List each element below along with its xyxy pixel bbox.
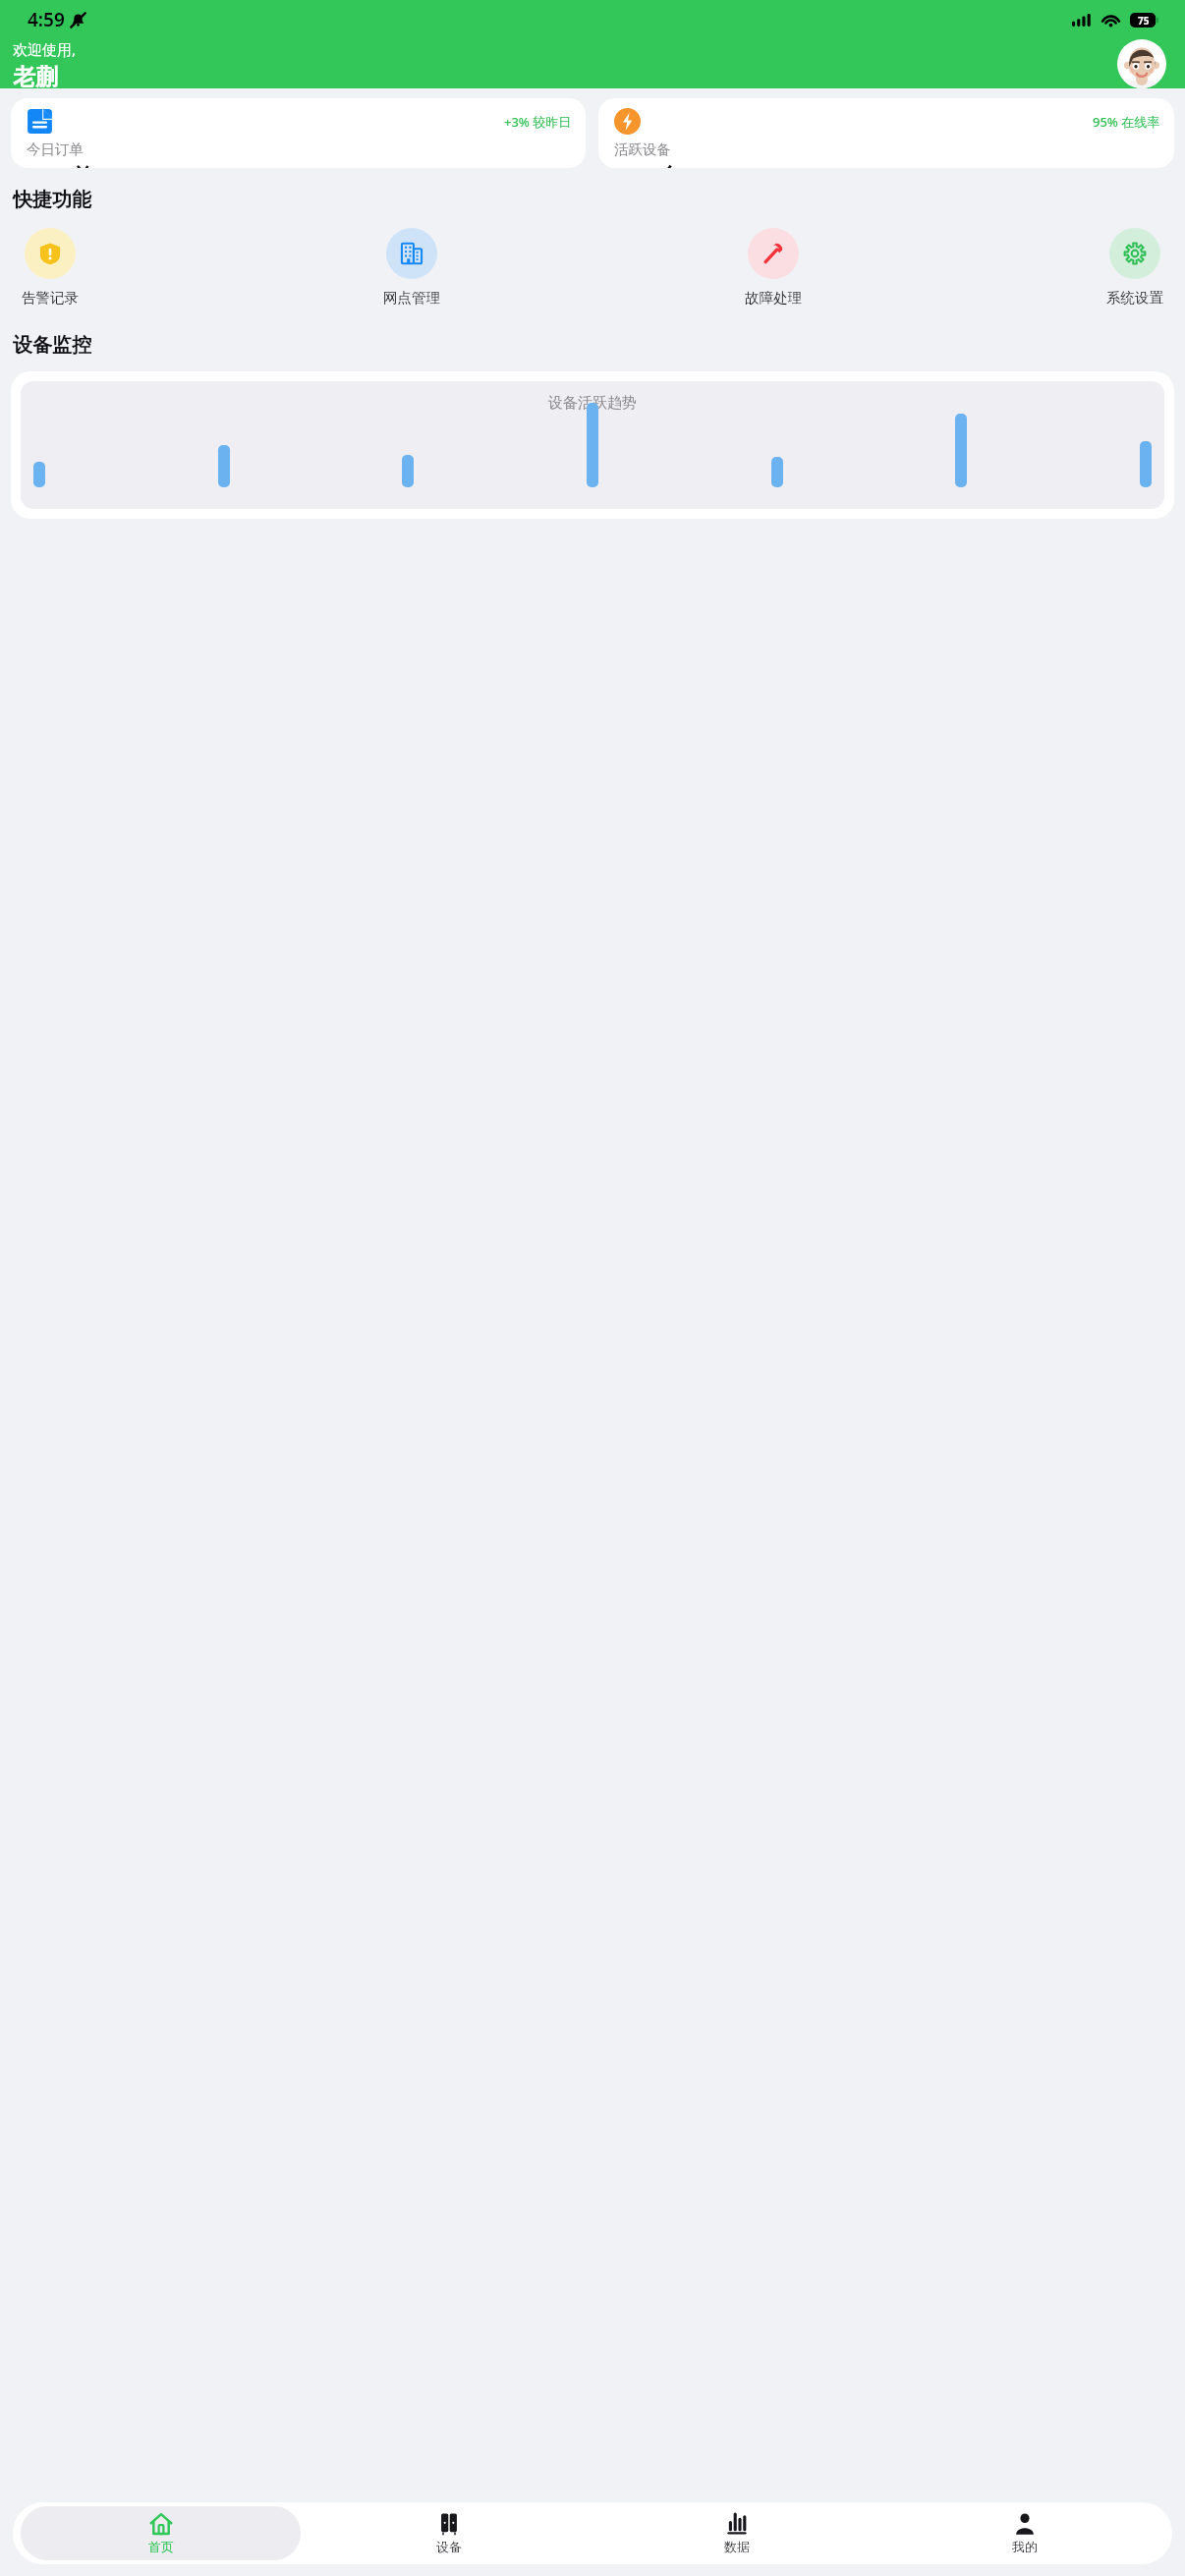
staticText: 95% 在线率 bbox=[1093, 113, 1160, 131]
staticText: 723 单 bbox=[27, 160, 94, 168]
staticText: 4:59 bbox=[28, 7, 65, 32]
staticText: 设备活跃趋势 bbox=[548, 394, 637, 413]
button[interactable]: 95% 在线率 bbox=[598, 98, 1174, 168]
staticText: 老蒯 bbox=[13, 63, 58, 88]
button[interactable]: 系统设置 bbox=[1097, 228, 1173, 307]
button[interactable]: 设备 bbox=[309, 2506, 589, 2560]
button[interactable]: 网点管理 bbox=[373, 228, 450, 307]
staticText: 75 bbox=[1138, 14, 1150, 28]
staticText: 故障处理 bbox=[745, 289, 802, 307]
staticText: 网点管理 bbox=[383, 289, 440, 307]
staticText: 快捷功能 bbox=[13, 188, 91, 212]
staticText: 系统设置 bbox=[1106, 289, 1163, 307]
button[interactable]: 数据 bbox=[596, 2506, 876, 2560]
staticText: 欢迎使用, bbox=[13, 39, 77, 59]
staticText: 告警记录 bbox=[22, 289, 79, 307]
staticText: 数据 bbox=[724, 2539, 750, 2554]
staticText: 136 台 bbox=[614, 160, 682, 168]
staticText: 设备监控 bbox=[13, 333, 91, 358]
staticText: 今日订单 bbox=[27, 140, 84, 158]
button[interactable]: 告警记录 bbox=[12, 228, 88, 307]
button[interactable]: 我的 bbox=[884, 2506, 1164, 2560]
staticText: 设备 bbox=[436, 2539, 462, 2554]
button[interactable]: 故障处理 bbox=[735, 228, 812, 307]
staticText: 我的 bbox=[1012, 2539, 1038, 2554]
button[interactable]: 设备活跃趋势 bbox=[11, 371, 1174, 519]
button[interactable]: 首页 bbox=[21, 2506, 301, 2560]
staticText: 首页 bbox=[148, 2539, 174, 2554]
button[interactable]: Profile bbox=[1117, 39, 1166, 88]
staticText: 活跃设备 bbox=[614, 140, 671, 158]
staticText: +3% 较昨日 bbox=[504, 113, 572, 131]
button[interactable]: +3% 较昨日 bbox=[11, 98, 586, 168]
